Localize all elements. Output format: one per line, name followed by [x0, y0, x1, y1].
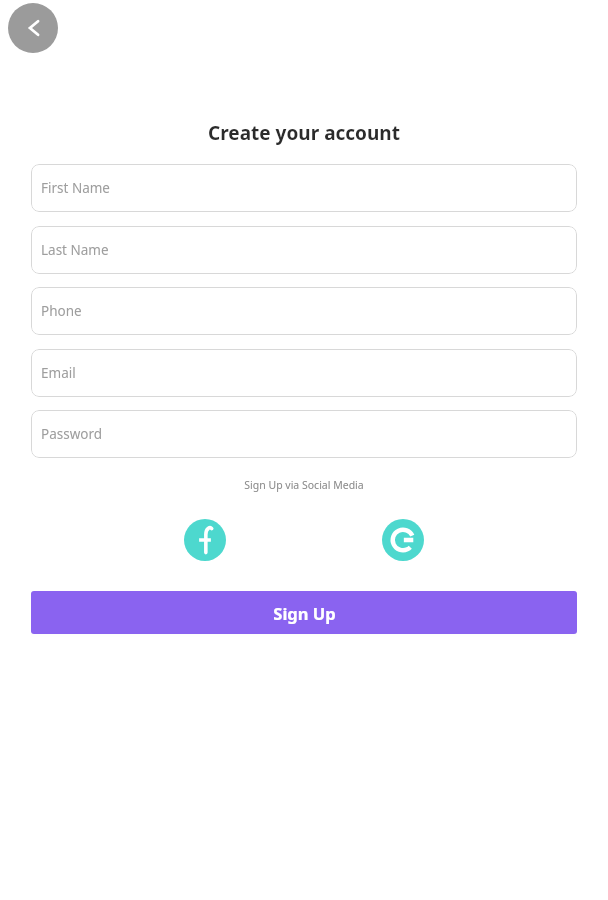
staticText: Last Name [41, 241, 109, 259]
button[interactable]: Password [31, 410, 577, 458]
staticText: Sign Up via Social Media [244, 478, 364, 492]
button[interactable]: Email [31, 349, 577, 397]
staticText: Password [41, 425, 103, 443]
button[interactable]: Last Name [31, 226, 577, 274]
staticText: Email [41, 364, 76, 382]
button[interactable]: Back [8, 3, 58, 53]
button[interactable]: Phone [31, 287, 577, 335]
button[interactable]: Sign up with Google [382, 519, 424, 561]
button[interactable]: Sign Up [31, 591, 577, 634]
staticText: Phone [41, 302, 82, 320]
staticText: Sign Up [273, 602, 336, 624]
staticText: Create your account [208, 120, 400, 146]
button[interactable]: Sign up with Facebook [184, 519, 226, 561]
button[interactable]: First Name [31, 164, 577, 212]
staticText: First Name [41, 179, 110, 197]
